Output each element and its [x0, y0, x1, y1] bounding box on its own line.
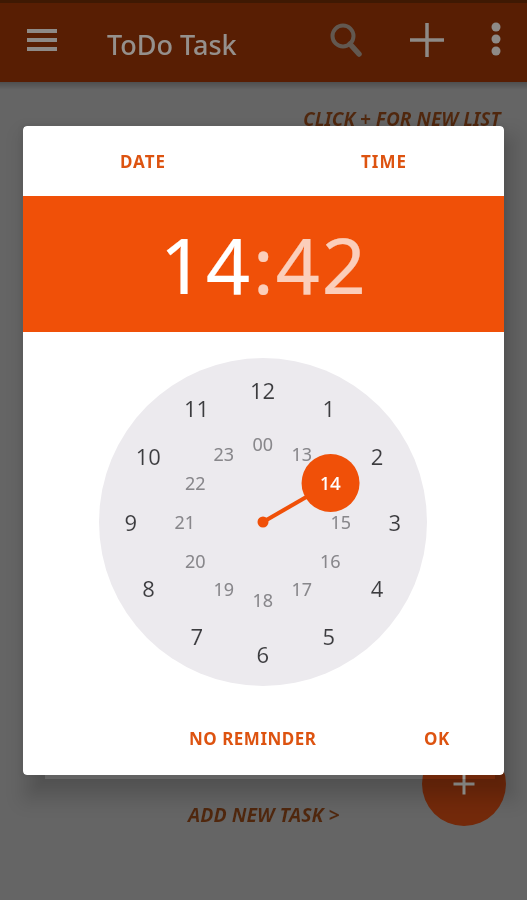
button[interactable]: TIME — [263, 126, 504, 196]
button[interactable] — [403, 16, 451, 64]
button[interactable]: OK — [397, 709, 477, 767]
staticText: :42 — [253, 212, 368, 317]
staticText: CLICK + FOR NEW LIST — [303, 106, 501, 132]
button[interactable] — [320, 16, 368, 64]
staticText: NO REMINDER — [189, 727, 317, 750]
staticText: ToDo Task — [107, 26, 237, 63]
button[interactable] — [422, 742, 506, 826]
staticText: DATE — [120, 150, 167, 173]
button[interactable]: DATE — [23, 126, 263, 196]
staticText: TIME — [361, 150, 407, 173]
button[interactable]: NO REMINDER — [170, 709, 336, 767]
button[interactable] — [18, 16, 66, 64]
staticText: ADD NEW TASK > — [188, 801, 340, 828]
button[interactable] — [472, 16, 520, 64]
staticText: 14 — [160, 212, 253, 317]
staticText: OK — [424, 727, 450, 750]
